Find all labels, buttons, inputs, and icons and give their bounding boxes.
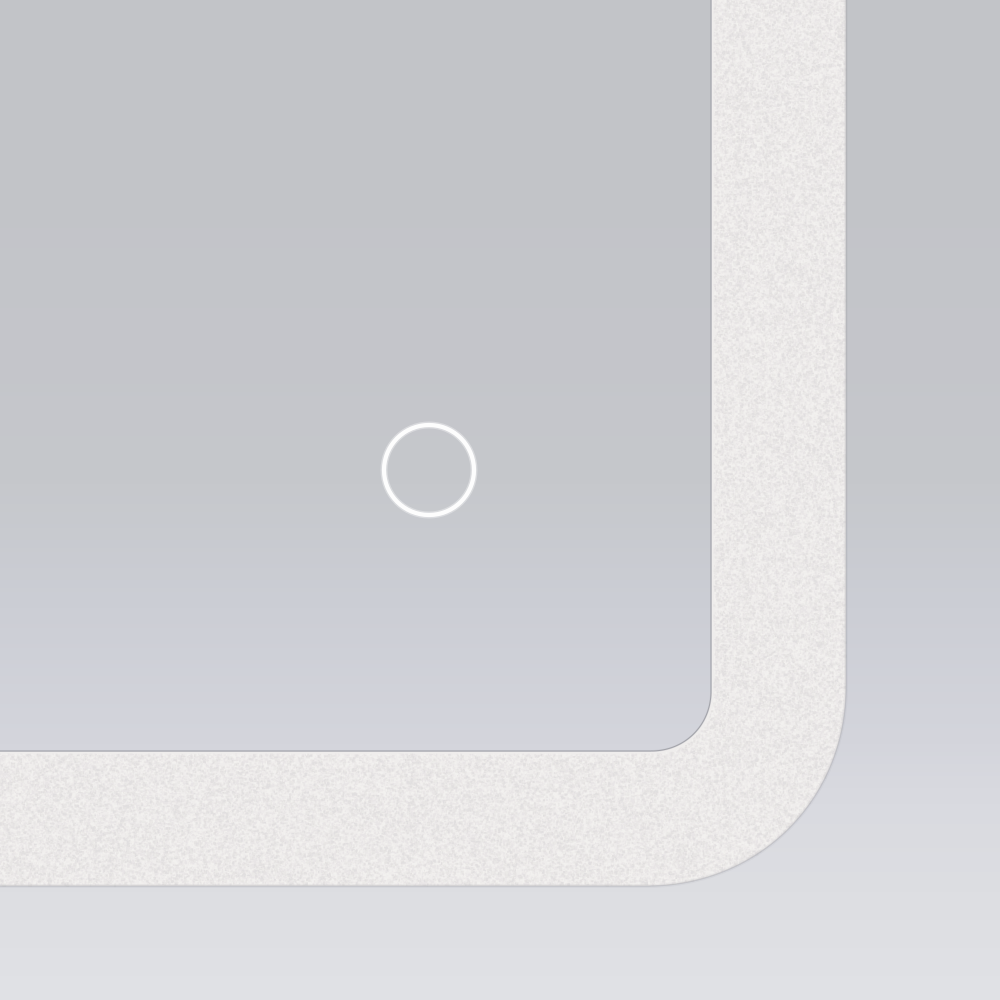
button[interactable]: Focus	[379, 420, 479, 520]
